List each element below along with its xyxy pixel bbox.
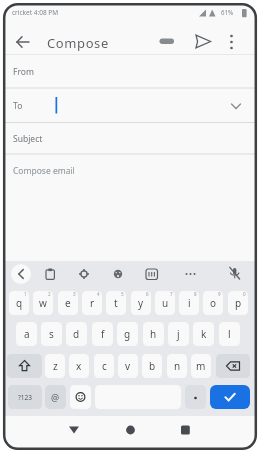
staticText: n	[174, 359, 181, 373]
staticText: cricket 4:08 PM	[12, 8, 59, 17]
staticText: 1	[24, 291, 27, 297]
staticText: h	[150, 327, 157, 341]
button[interactable]	[192, 30, 214, 52]
staticText: 61%	[221, 8, 234, 16]
button[interactable]: a	[16, 322, 37, 346]
button[interactable]: g	[117, 322, 138, 346]
staticText: 5	[121, 291, 124, 297]
button[interactable]: w	[33, 291, 53, 315]
staticText: j	[177, 327, 180, 341]
button[interactable]: v	[118, 354, 138, 378]
staticText: From	[13, 66, 34, 78]
staticText: Compose email	[13, 165, 75, 177]
staticText: w	[39, 296, 47, 310]
button[interactable]: i	[179, 291, 199, 315]
button[interactable]	[118, 420, 142, 440]
staticText: k	[201, 327, 207, 341]
staticText: 0	[243, 291, 246, 297]
button[interactable]: p	[228, 291, 248, 315]
staticText: 4	[97, 291, 100, 297]
button[interactable]	[11, 264, 31, 284]
button[interactable]	[4, 88, 256, 122]
staticText: q	[16, 296, 23, 310]
button[interactable]: q	[9, 291, 29, 315]
button[interactable]	[10, 30, 34, 54]
button[interactable]: b	[142, 354, 162, 378]
button[interactable]: r	[82, 291, 102, 315]
staticText: v	[125, 359, 131, 373]
staticText: f	[101, 327, 105, 341]
button[interactable]: @	[45, 385, 66, 409]
button[interactable]: z	[45, 354, 65, 378]
button[interactable]: f	[92, 322, 113, 346]
button[interactable]	[173, 420, 197, 440]
button[interactable]: d	[66, 322, 87, 346]
button[interactable]: e	[58, 291, 78, 315]
button[interactable]	[216, 354, 250, 378]
staticText: To	[13, 100, 23, 112]
staticText: Subject	[13, 133, 43, 145]
button[interactable]: k	[193, 322, 214, 346]
staticText: g	[124, 327, 131, 341]
staticText: m	[196, 359, 206, 373]
button[interactable]: x	[69, 354, 89, 378]
staticText: 6	[146, 291, 149, 297]
button[interactable]: o	[203, 291, 223, 315]
staticText: l	[228, 327, 231, 341]
button[interactable]	[4, 55, 256, 88]
staticText: 9	[218, 291, 221, 297]
button[interactable]: ?123	[8, 385, 42, 409]
staticText: 7	[170, 291, 173, 297]
button[interactable]: c	[94, 354, 114, 378]
button[interactable]	[62, 420, 86, 440]
staticText: t	[114, 296, 118, 310]
button[interactable]: n	[167, 354, 187, 378]
button[interactable]: y	[131, 291, 151, 315]
staticText: z	[53, 359, 58, 373]
button[interactable]: h	[143, 322, 164, 346]
button[interactable]	[70, 385, 91, 409]
staticText: r	[90, 296, 95, 310]
staticText: c	[102, 359, 107, 373]
button[interactable]: u	[155, 291, 175, 315]
button[interactable]	[185, 385, 206, 409]
button[interactable]	[4, 123, 256, 154]
staticText: b	[149, 359, 156, 373]
button[interactable]	[7, 354, 42, 378]
button[interactable]: j	[168, 322, 189, 346]
staticText: s	[49, 327, 54, 341]
staticText: ?123	[18, 393, 32, 402]
staticText: Compose	[47, 34, 109, 52]
button[interactable]	[210, 385, 250, 409]
button[interactable]: s	[41, 322, 62, 346]
staticText: 3	[73, 291, 76, 297]
staticText: o	[210, 296, 217, 310]
button[interactable]	[156, 30, 178, 52]
button[interactable]: l	[219, 322, 240, 346]
staticText: d	[73, 327, 80, 341]
staticText: y	[138, 296, 144, 310]
staticText: 2	[48, 291, 51, 297]
staticText: i	[188, 296, 191, 310]
staticText: 8	[194, 291, 197, 297]
staticText: a	[24, 327, 30, 341]
staticText: u	[162, 296, 169, 310]
button[interactable]	[222, 30, 242, 54]
staticText: e	[65, 296, 71, 310]
staticText: x	[76, 359, 82, 373]
button[interactable]: t	[106, 291, 126, 315]
staticText: @	[51, 391, 60, 403]
button[interactable]	[4, 154, 256, 194]
staticText: p	[235, 296, 242, 310]
button[interactable]: m	[191, 354, 211, 378]
